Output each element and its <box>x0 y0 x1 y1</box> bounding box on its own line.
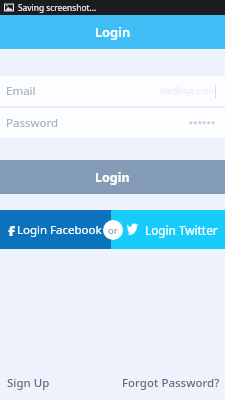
button[interactable]: Login <box>0 160 225 194</box>
button[interactable]: Sign Up <box>7 375 50 391</box>
staticText: Login <box>95 23 131 41</box>
button[interactable]: Email <box>0 76 225 106</box>
button[interactable]: f <box>0 210 111 249</box>
button[interactable]: Password <box>0 108 225 138</box>
staticText: Login <box>95 169 130 186</box>
staticText: Login Facebook <box>17 222 102 238</box>
staticText: Email <box>6 83 36 99</box>
button[interactable]: Forgot Password? <box>122 375 220 391</box>
staticText: Password <box>6 115 59 131</box>
staticText: abc@xyz.com <box>160 85 214 97</box>
button[interactable]: or <box>103 220 123 240</box>
staticText: or <box>108 224 118 237</box>
staticText: Saving screenshot... <box>18 2 97 13</box>
staticText: Forgot Password? <box>122 375 220 391</box>
staticText: ****** <box>189 119 216 129</box>
staticText: f <box>8 222 15 236</box>
staticText: Sign Up <box>7 375 50 391</box>
button[interactable]: Login Twitter <box>111 210 225 249</box>
staticText: Login Twitter <box>145 222 218 238</box>
